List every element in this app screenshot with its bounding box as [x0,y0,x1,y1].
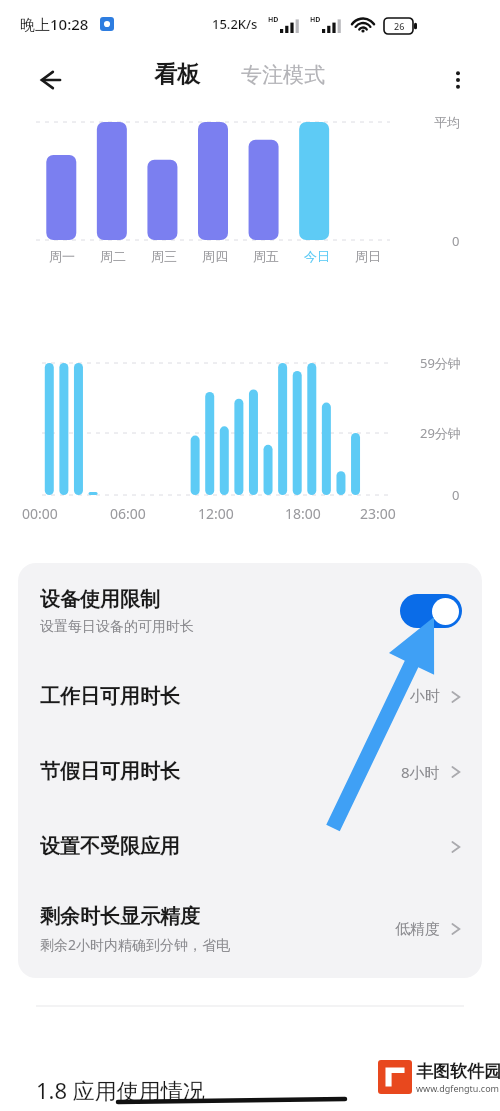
staticText: 周四 [202,248,228,264]
staticText: HD [310,15,321,25]
staticText: 今日 [304,248,330,264]
button[interactable]: 剩余时长显示精度 [18,884,482,974]
staticText: www.dgfengtu.com [416,1082,500,1094]
staticText: 29分钟 [420,424,461,442]
button[interactable]: 设置不受限应用 [18,809,482,884]
staticText: 周三 [151,248,177,264]
staticText: 剩余时长显示精度 [40,904,200,929]
staticText: 丰图软件园 [416,1061,500,1082]
staticText: 0 [452,486,460,504]
staticText: 15.2K/s [212,15,258,33]
staticText: 0 [452,232,460,250]
staticText: 低精度 [395,920,440,939]
staticText: 周日 [355,248,381,264]
staticText: HD [268,15,279,25]
button[interactable]: 专注模式 [241,62,325,88]
staticText: 18:00 [285,504,321,523]
button[interactable]: More options [436,58,480,102]
button[interactable]: 节假日可用时长 [18,734,482,809]
staticText: 设置不受限应用 [40,834,450,859]
staticText: 设备使用限制 [40,587,160,612]
staticText: 设置每日设备的可用时长 [40,618,194,636]
staticText: 59分钟 [420,354,461,372]
staticText: 26 [394,20,405,32]
staticText: 剩余2小时内精确到分钟，省电 [40,935,231,954]
staticText: 工作日可用时长 [40,684,410,709]
staticText: 23:00 [360,504,396,523]
staticText: 12:00 [198,504,234,523]
staticText: 1.8 应用使用情况 [36,1075,205,1105]
staticText: 小时 [410,687,440,706]
button[interactable]: 工作日可用时长 [18,659,482,734]
button[interactable]: Back [28,58,72,102]
staticText: 周二 [100,248,126,264]
button[interactable]: 看板 [154,60,200,89]
staticText: 晚上10:28 [20,14,89,34]
staticText: 8小时 [401,762,440,782]
staticText: 专注模式 [241,62,325,88]
staticText: 平均 [434,114,460,130]
staticText: 看板 [154,60,200,89]
button[interactable]: 设备使用限制 [18,563,482,659]
staticText: 节假日可用时长 [40,759,401,784]
staticText: 周一 [49,248,75,264]
staticText: 00:00 [22,504,58,523]
staticText: 周五 [253,248,279,264]
button[interactable]: 设备使用限制 toggle [400,594,462,628]
staticText: 06:00 [110,504,146,523]
